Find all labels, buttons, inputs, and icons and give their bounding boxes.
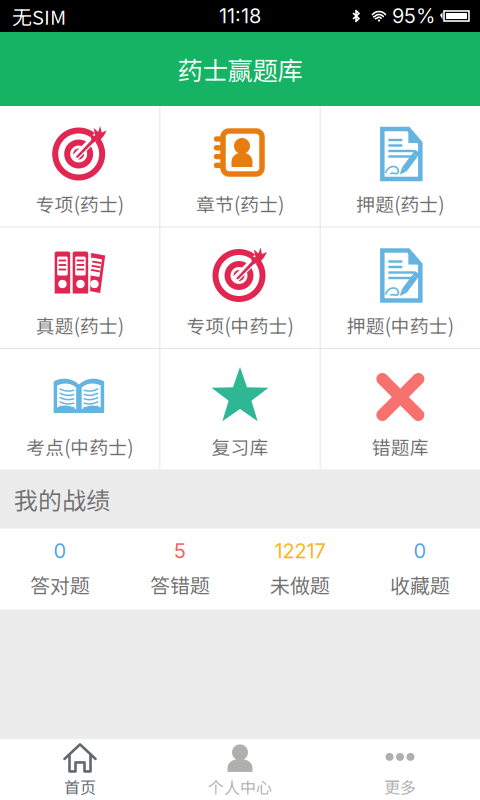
button[interactable]: 更多: [320, 739, 480, 800]
button[interactable]: 首页: [0, 739, 160, 800]
staticText: 无SIM: [12, 1, 66, 30]
staticText: 答对题: [30, 570, 90, 599]
button[interactable]: 章节(药士): [160, 106, 320, 226]
staticText: 95%: [392, 4, 435, 28]
staticText: 5: [174, 539, 186, 563]
staticText: 考点(中药士): [26, 433, 133, 460]
staticText: 真题(药士): [36, 311, 124, 338]
button[interactable]: 考点(中药士): [0, 349, 159, 469]
button[interactable]: 专项(药士): [0, 106, 159, 226]
staticText: 个人中心: [208, 775, 272, 798]
staticText: 专项(药士): [36, 190, 124, 217]
staticText: 12217: [274, 539, 325, 563]
staticText: 11:18: [219, 4, 261, 28]
staticText: 我的战绩: [14, 482, 110, 516]
button[interactable]: 押题(药士): [321, 106, 480, 226]
staticText: 未做题: [270, 570, 330, 599]
staticText: 药士赢题库: [177, 51, 302, 87]
staticText: 0: [413, 539, 426, 563]
staticText: 错题库: [372, 433, 429, 460]
button[interactable]: 真题(药士): [0, 227, 159, 348]
staticText: 首页: [64, 775, 96, 798]
staticText: 专项(中药士): [186, 311, 293, 338]
button[interactable]: 押题(中药士): [321, 227, 480, 348]
button[interactable]: 专项(中药士): [160, 227, 320, 348]
staticText: 章节(药士): [196, 190, 284, 217]
staticText: 答错题: [150, 570, 210, 599]
staticText: 0: [53, 539, 66, 563]
staticText: 复习库: [211, 433, 268, 460]
button[interactable]: 错题库: [321, 349, 480, 469]
button[interactable]: 个人中心: [160, 739, 320, 800]
staticText: 收藏题: [390, 570, 450, 599]
staticText: 更多: [384, 775, 416, 798]
staticText: 押题(中药士): [347, 311, 454, 338]
button[interactable]: 复习库: [160, 349, 320, 469]
staticText: 押题(药士): [356, 190, 444, 217]
